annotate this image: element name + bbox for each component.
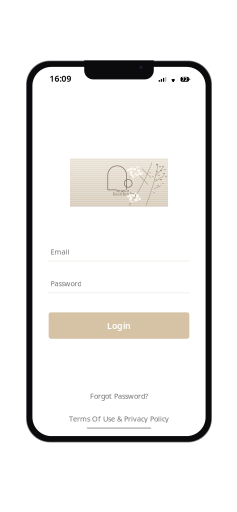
staticText: Terms Of Use & Privacy Policy (69, 414, 169, 424)
staticText: 72 (182, 76, 188, 82)
button[interactable]: Forgot Password? (32, 390, 206, 401)
staticText: Password (50, 278, 81, 288)
staticText: Login (107, 320, 131, 332)
button[interactable]: Password (48, 279, 190, 293)
staticText: Bloom Story Page (113, 193, 137, 196)
staticText: 16:09 (49, 73, 71, 84)
staticText: THE ARCH (116, 189, 129, 193)
button[interactable]: Email (48, 247, 190, 261)
button[interactable]: Terms Of Use & Privacy Policy (32, 413, 206, 424)
staticText: Email (50, 247, 69, 256)
staticText: Forgot Password? (90, 391, 148, 401)
button[interactable]: Login (49, 312, 189, 339)
